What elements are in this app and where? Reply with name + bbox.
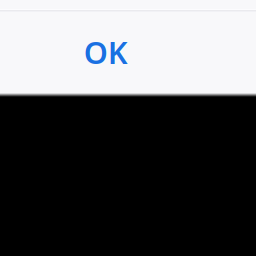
staticText: OK xyxy=(84,32,128,72)
